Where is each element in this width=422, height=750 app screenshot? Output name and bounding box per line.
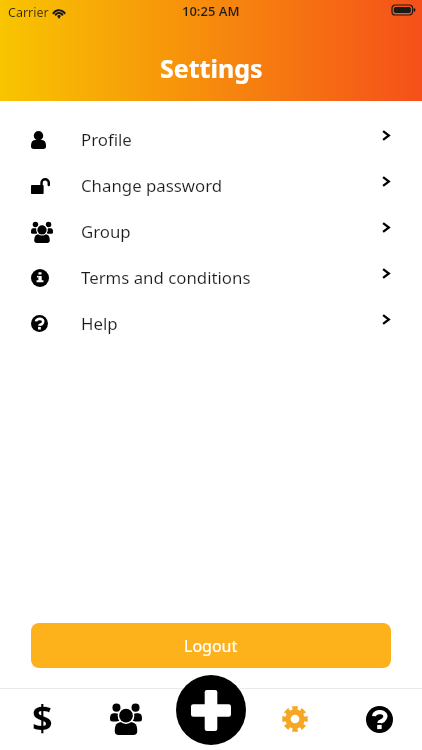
staticText: Group [81,220,131,243]
button[interactable]: Help [0,301,422,347]
button[interactable]: Settings [271,695,319,743]
button[interactable]: Change password [0,163,422,209]
staticText: 10:25 AM [182,2,240,20]
button[interactable]: Groups [102,695,150,743]
staticText: Settings [160,51,263,85]
staticText: Logout [184,635,238,657]
button[interactable]: Help [355,695,403,743]
button[interactable]: Payments [18,695,66,743]
button[interactable]: Group [0,209,422,255]
staticText: Terms and conditions [81,266,251,289]
button[interactable]: Add [176,675,246,745]
button[interactable]: Profile [0,117,422,163]
staticText: Help [81,312,118,335]
button[interactable]: Logout [31,623,391,668]
staticText: Change password [81,174,223,197]
staticText: Carrier [8,4,49,21]
staticText: Profile [81,128,132,151]
staticText: $ [32,693,53,741]
button[interactable]: Terms and conditions [0,255,422,301]
